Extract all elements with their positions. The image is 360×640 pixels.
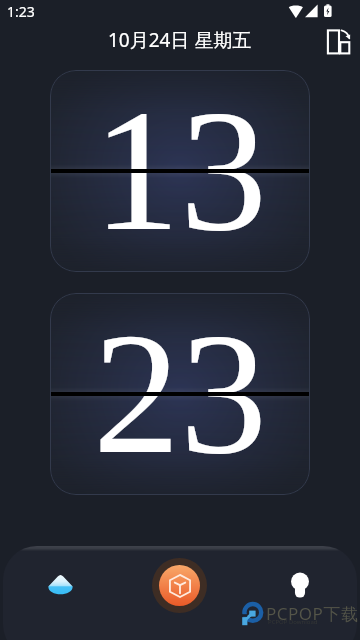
button[interactable]: 3D mode	[152, 558, 207, 613]
staticText: 13	[93, 74, 267, 267]
staticText: 1:23	[7, 2, 35, 21]
staticText: 10月24日 星期五	[108, 27, 252, 53]
button[interactable]: Brightness	[272, 557, 328, 613]
staticText: 23	[93, 297, 267, 490]
staticText: PCPOP Download	[268, 618, 318, 626]
button[interactable]: Theme	[32, 557, 88, 613]
button[interactable]: Rotate screen	[322, 21, 354, 53]
staticText: PCPOP下载	[266, 602, 359, 625]
